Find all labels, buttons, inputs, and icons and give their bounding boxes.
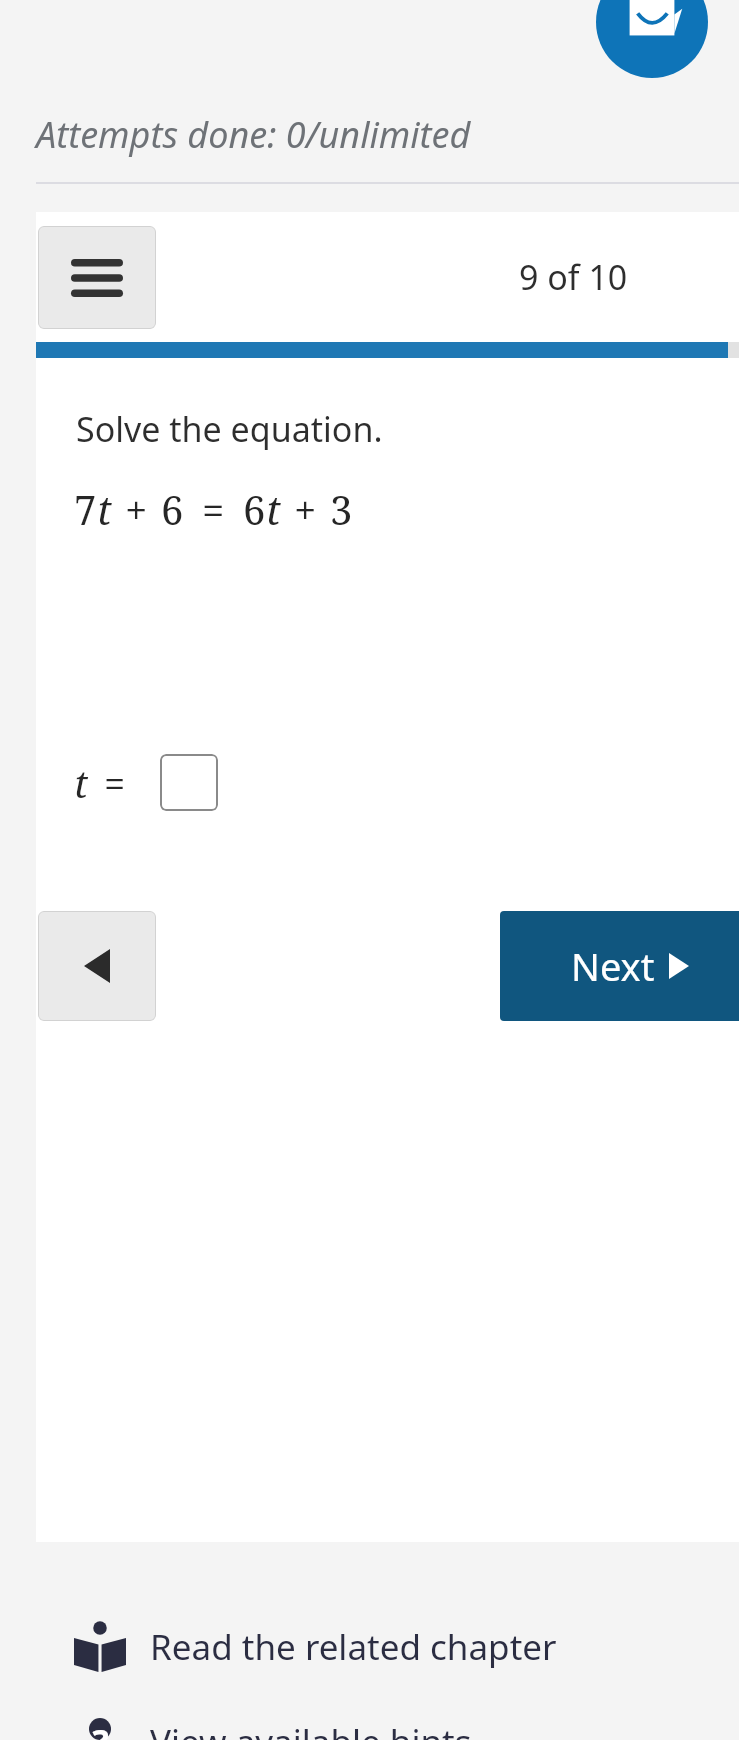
staticText: = — [202, 482, 225, 536]
staticText: 6 — [243, 482, 266, 536]
staticText: t — [74, 757, 88, 809]
button[interactable]: Chat support — [596, 0, 708, 78]
button[interactable]: ? — [0, 1718, 739, 1740]
staticText: View available hints — [150, 1718, 472, 1740]
staticText: Read the related chapter — [150, 1623, 557, 1671]
button[interactable]: Read the related chapter — [0, 1604, 739, 1690]
staticText: 6 — [161, 482, 184, 536]
staticText: + — [294, 482, 317, 536]
staticText: Solve the equation. — [76, 406, 383, 452]
staticText: = — [104, 757, 126, 809]
staticText: t — [266, 482, 281, 536]
button[interactable]: Menu — [38, 226, 156, 329]
button[interactable]: Answer input — [160, 754, 218, 811]
staticText: + — [125, 482, 148, 536]
staticText: t — [97, 482, 112, 536]
button[interactable]: Next — [500, 911, 739, 1021]
staticText: Next — [571, 940, 655, 992]
staticText: ? — [92, 1718, 109, 1740]
staticText: 7 — [74, 482, 97, 536]
staticText: Attempts done: 0/unlimited — [36, 110, 471, 159]
button[interactable]: Previous — [38, 911, 156, 1021]
staticText: 3 — [330, 482, 353, 536]
staticText: 9 of 10 — [519, 254, 628, 300]
